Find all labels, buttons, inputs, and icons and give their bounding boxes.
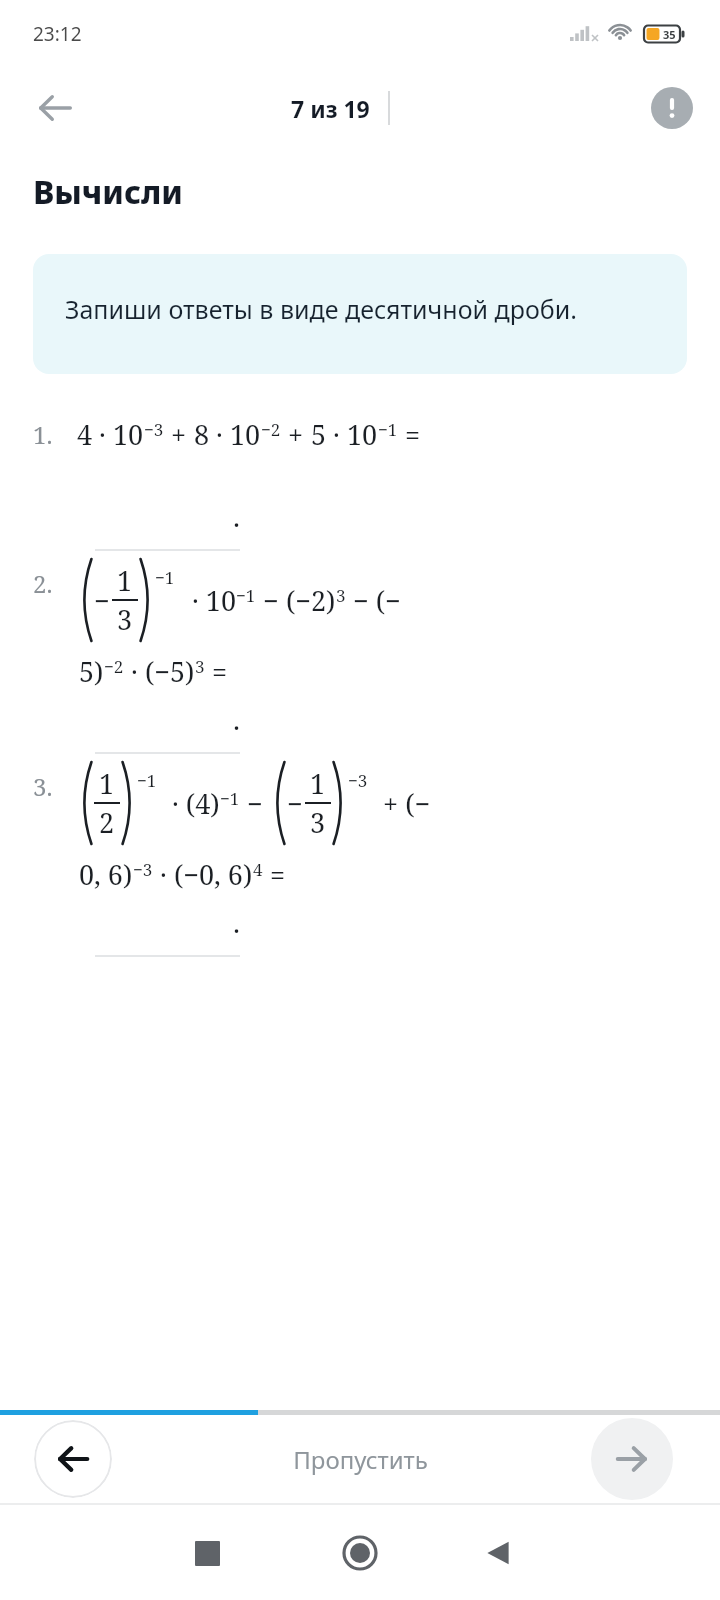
staticText: · 10 [185,582,236,619]
button[interactable]: Back [20,73,90,143]
staticText: · (4) [165,785,220,822]
staticText: −2 [104,655,124,678]
staticText: − [240,785,270,822]
staticText: + [281,416,311,453]
staticText: 35 [663,27,676,42]
staticText: −1 [220,787,240,810]
staticText: 5) [79,653,104,690]
staticText: 4 · 10 [77,416,144,453]
button[interactable]: Hint [646,82,698,134]
staticText: = [263,856,286,893]
staticText: = [205,653,228,690]
staticText: 2 [99,804,115,841]
staticText: Пропустить [293,1443,428,1476]
button[interactable]: Recents [175,1521,239,1585]
staticText: −1 [378,418,398,441]
staticText: 5 · 10 [311,416,378,453]
staticText: −3 [144,418,164,441]
staticText: 1. [33,418,53,451]
staticText: 3. [33,770,53,803]
staticText: 0, 6) [79,856,133,893]
staticText: −3 [348,769,368,792]
staticText: −1 [236,584,256,607]
staticText: 1 [117,562,133,599]
staticText: −1 [155,566,175,589]
staticText: − [94,582,110,619]
button[interactable]: Home [328,1521,392,1585]
staticText: (−0, 6) [174,856,253,893]
staticText: 1 [99,765,115,802]
staticText: (−2) [286,582,336,619]
staticText: − [287,785,303,822]
button[interactable]: Back [466,1521,530,1585]
staticText: 23:12 [33,21,82,47]
staticText: −2 [261,418,281,441]
staticText: · [124,653,145,690]
staticText: . [233,700,241,738]
staticText: − (− [346,582,401,619]
staticText: 7 из 19 [291,93,370,124]
staticText: · [153,856,174,893]
staticText: = [398,416,421,453]
button[interactable]: Next [591,1418,673,1500]
staticText: . [233,903,241,941]
staticText: + [164,416,194,453]
staticText: −1 [137,769,157,792]
button[interactable]: Previous [34,1420,112,1498]
staticText: − [256,582,286,619]
staticText: . [233,497,241,535]
staticText: 3 [117,601,133,638]
staticText: 3 [336,584,346,607]
button[interactable]: Пропустить [273,1433,448,1486]
staticText: 1 [310,765,326,802]
staticText: −3 [133,858,153,881]
staticText: 8 · 10 [194,416,261,453]
staticText: + (− [376,785,431,822]
staticText: Вычисли [33,170,183,214]
staticText: Запиши ответы в виде десятичной дроби. [65,292,577,326]
staticText: 3 [310,804,326,841]
staticText: (−5) [145,653,195,690]
staticText: 2. [33,567,53,600]
staticText: 4 [253,858,263,881]
staticText: 3 [195,655,205,678]
